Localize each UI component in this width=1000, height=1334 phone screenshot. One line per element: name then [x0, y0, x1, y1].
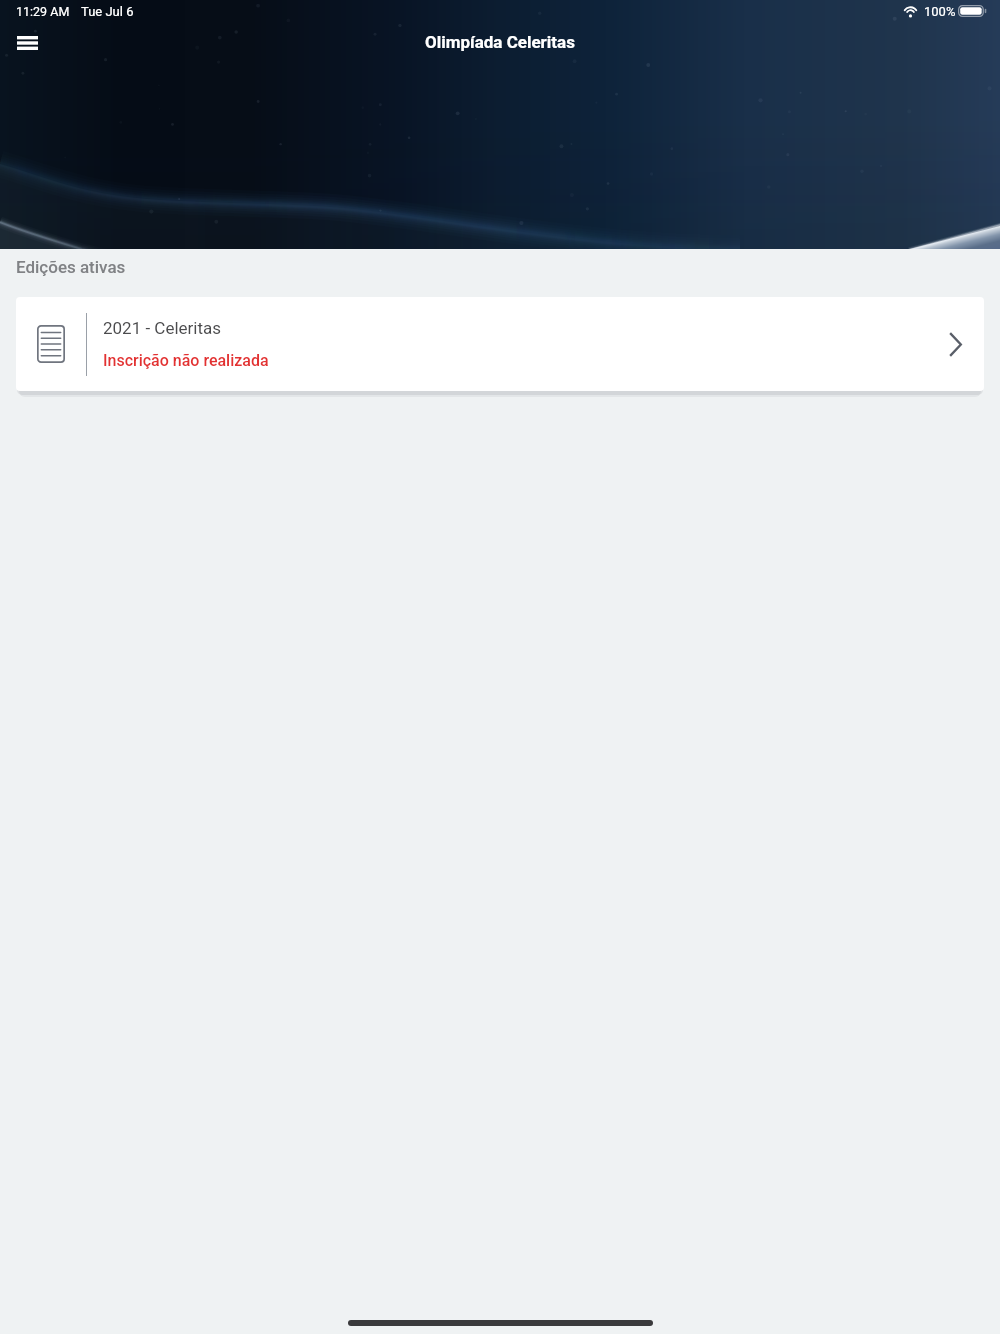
staticText: 100% — [924, 4, 956, 19]
button[interactable]: Menu — [5, 20, 49, 64]
button[interactable]: Abrir edição — [931, 320, 979, 368]
staticText: Edições ativas — [16, 257, 126, 277]
staticText: Olimpíada Celeritas — [425, 32, 575, 52]
button[interactable]: 2021 - Celeritas — [16, 297, 984, 391]
staticText: Tue Jul 6 — [81, 4, 134, 19]
staticText: 11:29 AM — [16, 4, 70, 19]
staticText: Inscrição não realizada — [103, 351, 269, 370]
staticText: 2021 - Celeritas — [103, 318, 222, 338]
